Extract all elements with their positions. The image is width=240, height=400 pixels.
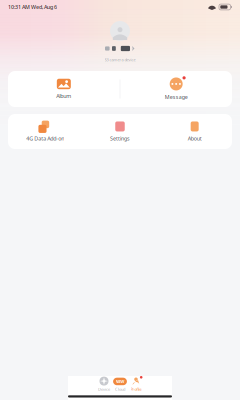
staticText: Cloud	[115, 387, 125, 392]
staticText: Device	[98, 387, 110, 392]
staticText: 10:31 AM Wed, Aug 6	[8, 3, 57, 11]
button[interactable]: 4G Data Add-on	[8, 114, 83, 149]
button[interactable]: Connected devices	[105, 45, 135, 52]
button[interactable]: About	[157, 114, 232, 149]
button[interactable]: Profile	[128, 376, 144, 391]
button[interactable]: Device	[96, 376, 112, 391]
button[interactable]: Settings	[83, 114, 157, 149]
staticText: 4G Data Add-on	[26, 135, 64, 142]
staticText: Settings	[110, 135, 130, 142]
staticText: Profile	[130, 387, 141, 392]
staticText: Message	[165, 93, 188, 101]
staticText: Album	[56, 92, 71, 100]
button[interactable]: Message	[120, 71, 232, 107]
button[interactable]: Cloud	[112, 376, 128, 391]
staticText: S3 camera device	[104, 57, 135, 62]
button[interactable]: Album	[8, 71, 120, 107]
staticText: NEW	[115, 379, 124, 384]
staticText: About	[188, 135, 202, 142]
